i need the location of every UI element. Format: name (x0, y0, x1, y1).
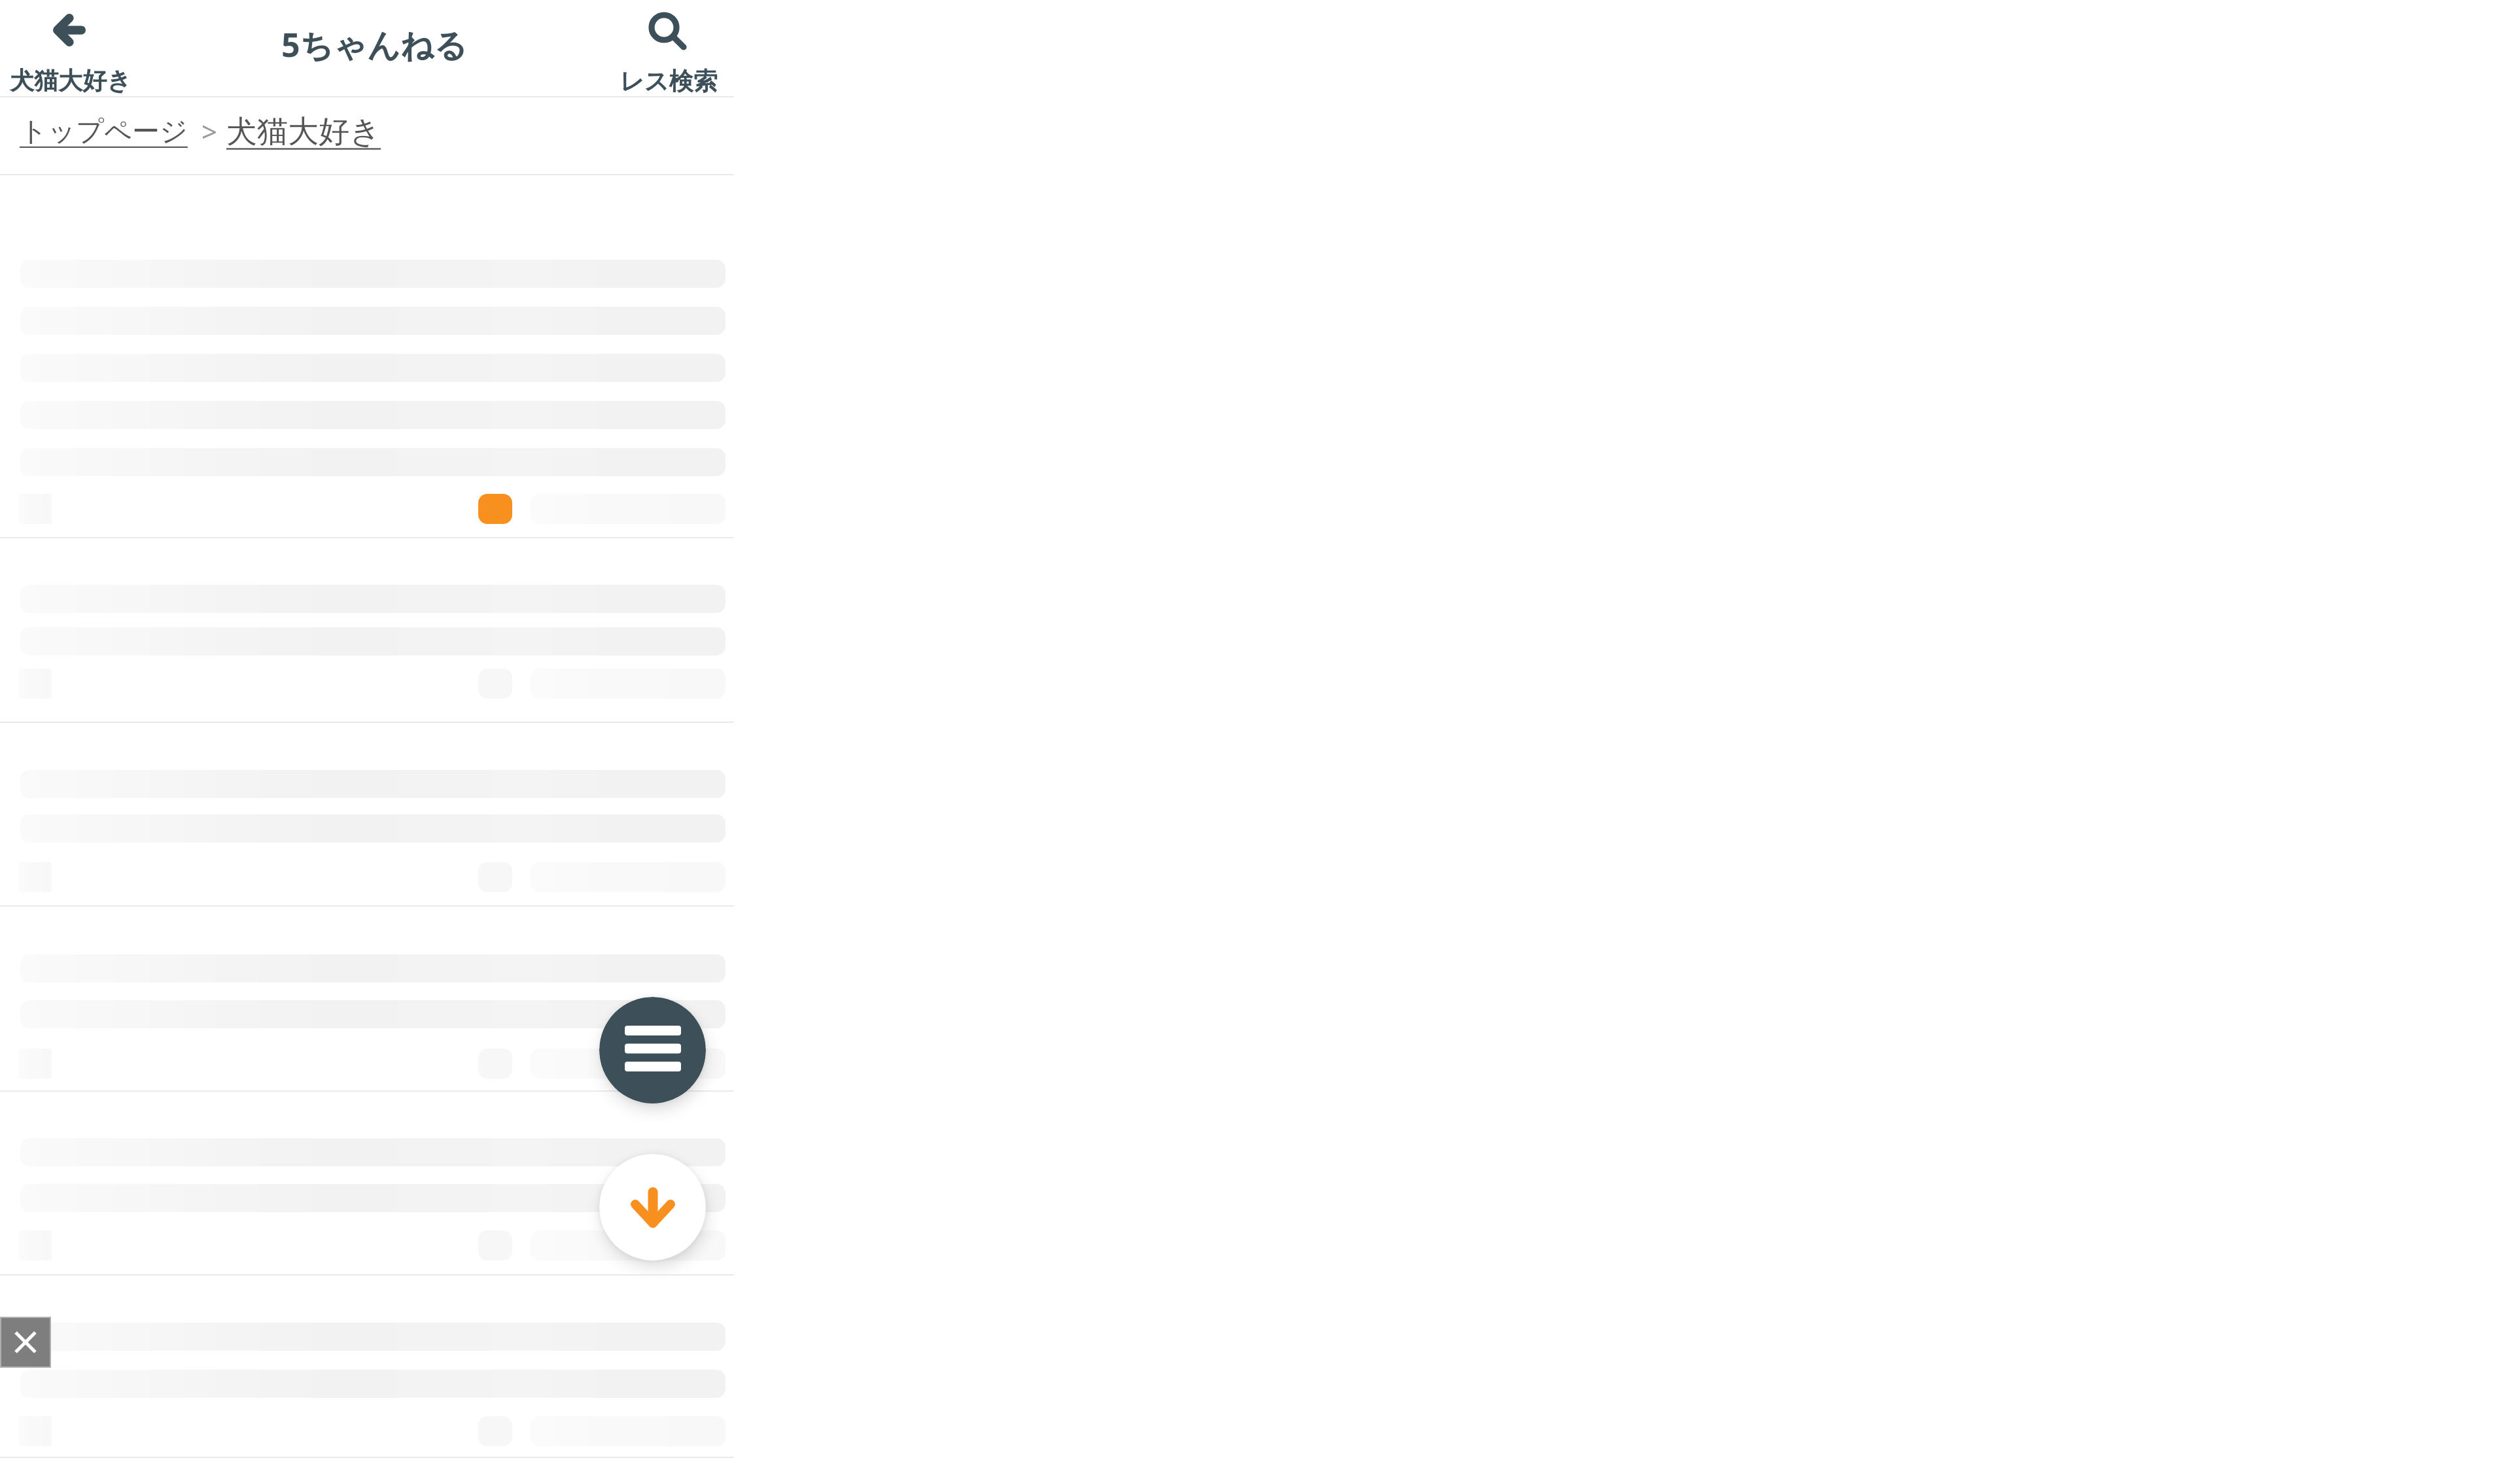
button[interactable] (0, 175, 734, 537)
button[interactable]: 犬猫大好き (226, 113, 381, 151)
button[interactable]: メニュー (599, 997, 706, 1104)
staticText: > (201, 113, 218, 150)
button[interactable] (0, 1274, 734, 1457)
staticText: 5ちゃんねる (281, 22, 468, 67)
staticText: 犬猫大好き (10, 65, 131, 96)
button[interactable]: レス検索 (616, 0, 722, 96)
button[interactable] (0, 721, 734, 905)
staticText: レス検索 (620, 66, 718, 97)
button[interactable]: トップページ (20, 114, 188, 149)
button[interactable]: 最下部へ移動 (599, 1154, 706, 1260)
button[interactable] (0, 537, 734, 721)
button[interactable]: 閉じる (0, 1317, 51, 1368)
button[interactable] (0, 905, 734, 1090)
button[interactable]: 戻る (20, 0, 119, 96)
button[interactable] (0, 1090, 734, 1274)
